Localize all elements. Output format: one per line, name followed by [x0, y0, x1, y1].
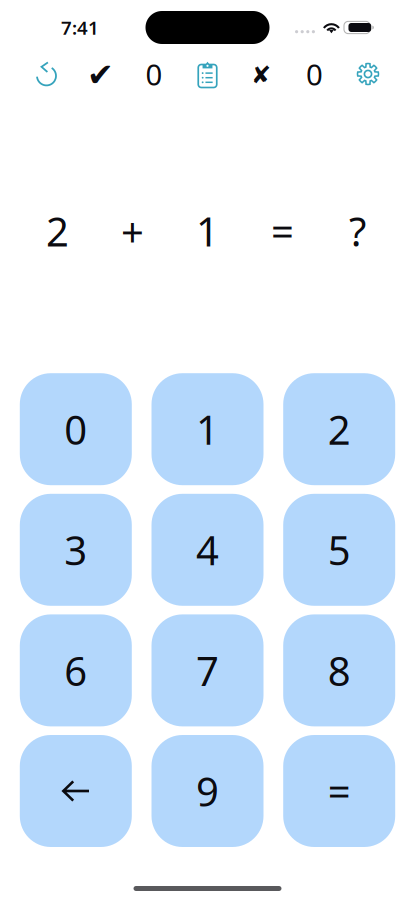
staticText: 2: [328, 403, 351, 456]
staticText: 1: [196, 403, 219, 456]
button[interactable]: 3: [20, 494, 132, 606]
staticText: 8: [328, 644, 351, 697]
button[interactable]: 9: [151, 735, 263, 847]
button[interactable]: Settings: [341, 56, 395, 92]
staticText: +: [121, 204, 144, 257]
staticText: 7: [196, 644, 219, 697]
button[interactable]: Restart: [20, 56, 74, 92]
staticText: 7:41: [61, 15, 99, 40]
staticText: ?: [349, 204, 366, 257]
button[interactable]: 6: [20, 614, 132, 726]
staticText: 0: [306, 54, 323, 93]
staticText: 2: [46, 204, 69, 257]
button[interactable]: 8: [283, 614, 395, 726]
button[interactable]: 7: [151, 614, 263, 726]
staticText: 3: [64, 523, 87, 576]
staticText: 4: [196, 523, 219, 576]
button[interactable]: =: [283, 735, 395, 847]
staticText: 1: [196, 204, 219, 257]
button[interactable]: [20, 735, 132, 847]
button[interactable]: 0: [20, 373, 132, 485]
staticText: 5: [328, 523, 351, 576]
staticText: ✔: [87, 57, 114, 93]
staticText: =: [328, 764, 351, 817]
button[interactable]: 2: [283, 373, 395, 485]
button[interactable]: 5: [283, 494, 395, 606]
staticText: ✘: [251, 61, 271, 89]
staticText: =: [271, 204, 294, 257]
button[interactable]: 4: [151, 494, 263, 606]
button[interactable]: Results: [181, 56, 234, 92]
staticText: 6: [64, 644, 87, 697]
button[interactable]: 1: [151, 373, 263, 485]
staticText: 0: [145, 54, 162, 93]
staticText: 0: [64, 403, 87, 456]
staticText: 9: [196, 764, 219, 817]
